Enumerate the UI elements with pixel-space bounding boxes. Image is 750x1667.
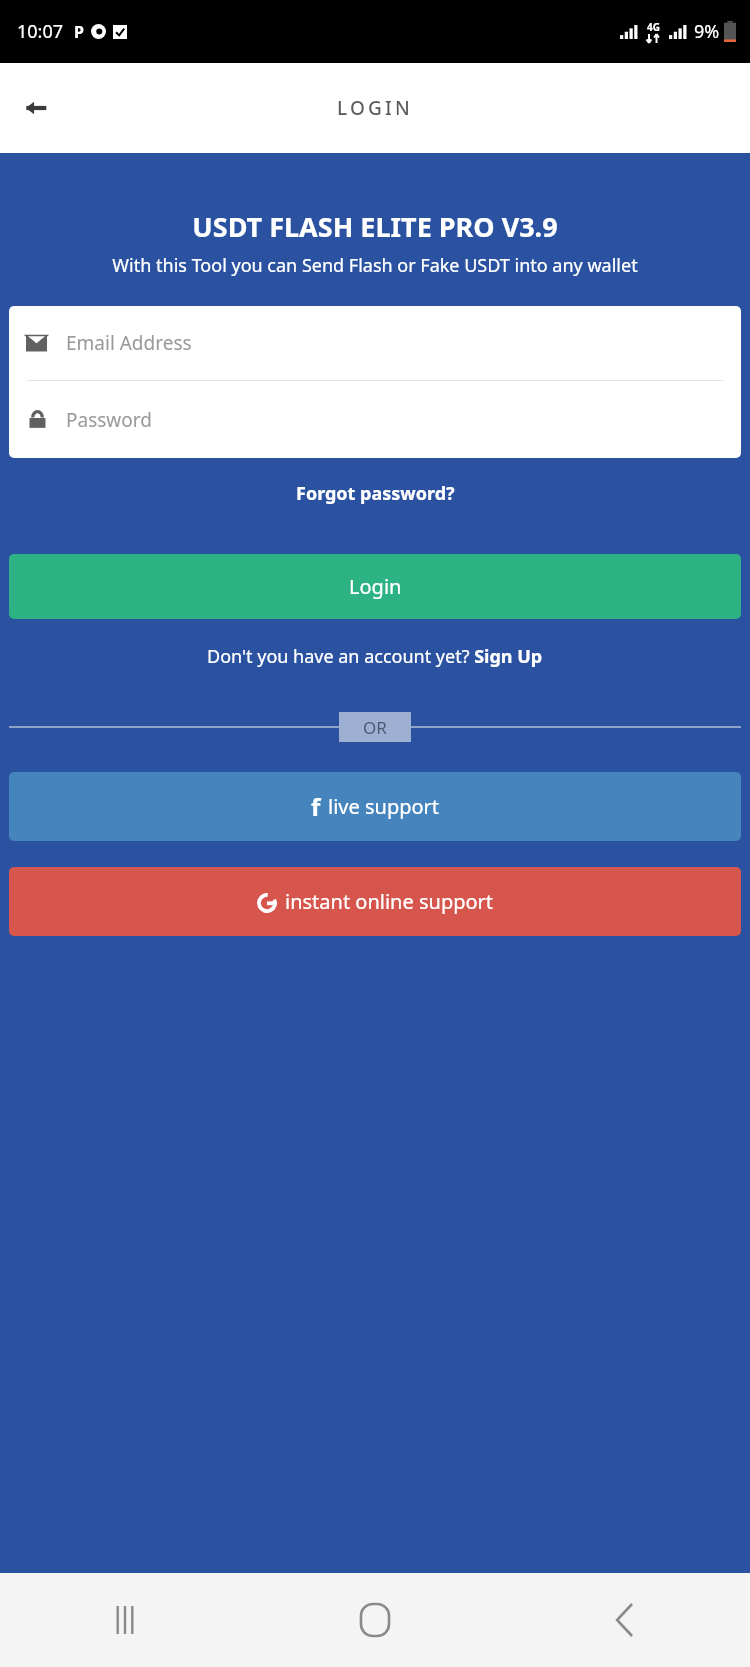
button[interactable]: Login: [9, 554, 741, 619]
staticText: Forgot password?: [296, 481, 455, 506]
staticText: Password: [66, 407, 152, 433]
button[interactable]: instant online support: [9, 867, 741, 936]
staticText: f: [311, 790, 321, 823]
button[interactable]: Home: [250, 1573, 500, 1667]
staticText: live support: [328, 793, 440, 820]
staticText: P: [74, 21, 84, 43]
staticText: 9%: [694, 19, 720, 44]
button[interactable]: Don't you have an account yet? Sign Up: [197, 641, 553, 672]
staticText: 10:07: [17, 19, 64, 44]
staticText: instant online support: [285, 888, 494, 915]
button[interactable]: f: [9, 772, 741, 841]
staticText: Don't you have an account yet? Sign Up: [207, 644, 543, 669]
staticText: Email Address: [66, 330, 192, 356]
staticText: With this Tool you can Send Flash or Fak…: [14, 253, 736, 278]
button[interactable]: Email Address: [9, 306, 741, 380]
staticText: 4G: [647, 20, 660, 34]
button[interactable]: Recents: [0, 1573, 250, 1667]
button[interactable]: Password: [9, 381, 741, 458]
button[interactable]: Forgot password?: [286, 477, 465, 510]
staticText: OR: [363, 716, 387, 739]
staticText: LOGIN: [337, 95, 413, 121]
staticText: Login: [349, 573, 402, 600]
staticText: USDT FLASH ELITE PRO V3.9: [0, 208, 750, 245]
button[interactable]: Back: [500, 1573, 750, 1667]
button[interactable]: Back: [8, 80, 64, 136]
